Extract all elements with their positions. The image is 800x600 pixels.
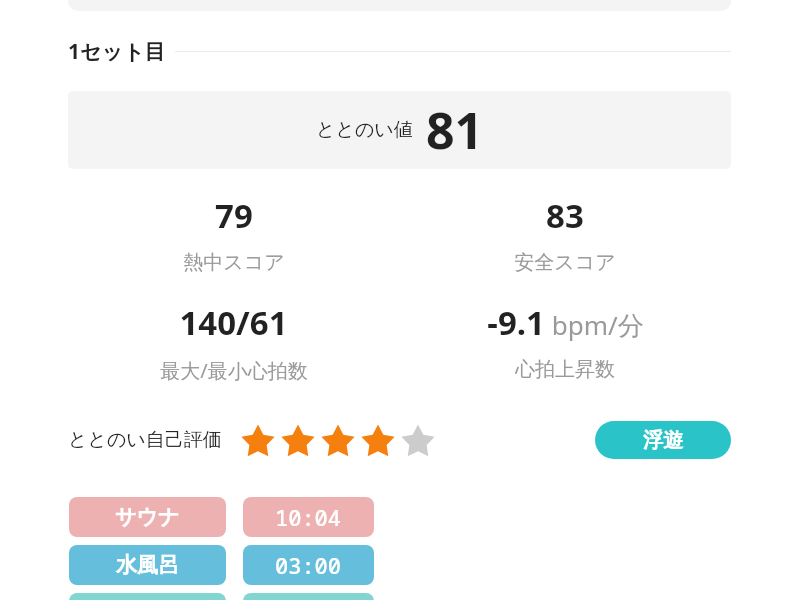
staticText: 水風呂	[116, 552, 179, 578]
staticText: 心拍上昇数	[515, 357, 615, 382]
button[interactable]: 03:00	[243, 545, 374, 585]
button[interactable]: 10:04	[243, 497, 374, 537]
staticText: 安全スコア	[514, 250, 616, 275]
staticText: ととのい値	[316, 118, 413, 142]
staticText: 03:00	[275, 550, 342, 580]
button[interactable]: 星 2	[278, 420, 318, 460]
button[interactable]: 浮遊	[595, 421, 731, 459]
staticText: -9.1 bpm/分	[487, 300, 644, 345]
button[interactable]: サウナ	[69, 497, 226, 537]
staticText: 1セット目	[68, 37, 166, 66]
button[interactable]: 星 5	[398, 420, 438, 460]
staticText: 10:04	[275, 502, 342, 532]
staticText: ととのい自己評価	[68, 428, 222, 452]
staticText: 79	[215, 193, 253, 238]
button[interactable]: 水風呂	[69, 545, 226, 585]
staticText: 83	[546, 193, 584, 238]
staticText: 81	[426, 96, 484, 164]
button[interactable]: 05:00	[243, 593, 374, 600]
button[interactable]: 星 1	[238, 420, 278, 460]
staticText: 浮遊	[643, 428, 683, 453]
staticText: 熱中スコア	[183, 250, 285, 275]
button[interactable]: 星 3	[318, 420, 358, 460]
button[interactable]: 休憩	[69, 593, 226, 600]
button[interactable]: 星 4	[358, 420, 398, 460]
staticText: 140/61	[179, 300, 288, 345]
staticText: サウナ	[115, 504, 180, 530]
staticText: 最大/最小心拍数	[160, 357, 308, 384]
